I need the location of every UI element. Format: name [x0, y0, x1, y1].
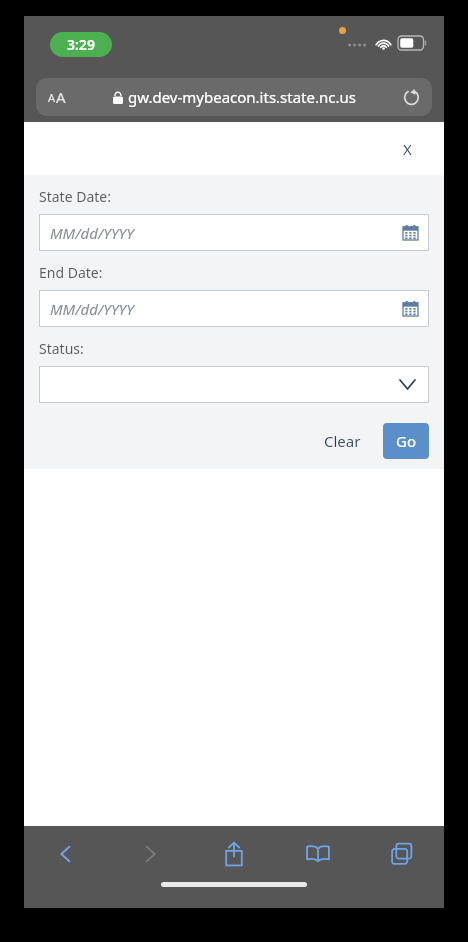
button[interactable]: Go [383, 423, 429, 459]
button[interactable]: Status dropdown [39, 366, 429, 403]
staticText: gw.dev-mybeacon.its.state.nc.us [128, 87, 356, 107]
staticText: A [48, 90, 56, 105]
button[interactable]: Bookmarks [276, 826, 360, 882]
button[interactable]: Forward [108, 826, 192, 882]
button[interactable]: Reload [398, 84, 424, 110]
button[interactable]: MM/dd/YYYY [39, 214, 429, 251]
staticText: End Date: [39, 263, 103, 282]
button[interactable]: Share [192, 826, 276, 882]
staticText: State Date: [39, 187, 111, 206]
button[interactable]: Tabs [360, 826, 444, 882]
button[interactable]: Back [24, 826, 108, 882]
staticText: MM/dd/YYYY [50, 299, 134, 319]
button[interactable]: Close [392, 134, 422, 164]
staticText: Go [396, 431, 416, 451]
staticText: MM/dd/YYYY [50, 223, 134, 243]
button[interactable]: A [36, 78, 432, 116]
staticText: Status: [39, 339, 84, 358]
staticText: Clear [324, 431, 361, 451]
button[interactable]: MM/dd/YYYY [39, 290, 429, 327]
staticText: X [403, 139, 412, 159]
staticText: 3:29 [67, 35, 95, 54]
button[interactable]: Clear [314, 423, 371, 459]
staticText: A [56, 87, 66, 107]
